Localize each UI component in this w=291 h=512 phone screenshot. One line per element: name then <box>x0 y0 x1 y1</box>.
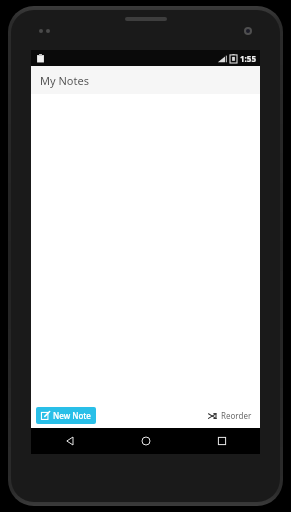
staticText: My Notes <box>40 73 89 88</box>
button[interactable]: Home <box>108 428 184 454</box>
button[interactable]: Back <box>31 428 108 454</box>
staticText: Reorder <box>221 410 252 421</box>
button[interactable]: Reorder <box>205 407 255 424</box>
button[interactable]: Recent apps <box>184 428 260 454</box>
staticText: New Note <box>53 410 91 421</box>
staticText: 1:55 <box>240 53 256 64</box>
button[interactable]: New Note <box>36 407 96 424</box>
